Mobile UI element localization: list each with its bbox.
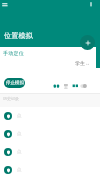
staticText: 点 bbox=[17, 167, 22, 173]
button[interactable]: Awards bbox=[63, 83, 69, 90]
button[interactable]: 点 bbox=[0, 125, 100, 143]
button[interactable]: 手动定位 bbox=[3, 50, 25, 56]
button[interactable]: Contacts bbox=[53, 83, 60, 90]
staticText: 点 bbox=[17, 113, 22, 119]
button[interactable]: 学生 bbox=[75, 60, 90, 66]
staticText: 点 bbox=[17, 131, 22, 137]
button[interactable]: 停止模拟 bbox=[4, 78, 25, 88]
button[interactable]: Menu bbox=[1, 1, 9, 8]
staticText: 点 bbox=[17, 149, 22, 155]
button[interactable]: Switch bbox=[80, 83, 88, 90]
staticText: 停止模拟 bbox=[6, 80, 24, 86]
button[interactable]: Add bbox=[80, 35, 95, 50]
button[interactable]: 点 bbox=[0, 107, 100, 125]
button[interactable]: 点 bbox=[0, 143, 100, 161]
staticText: 历史记录 bbox=[3, 96, 19, 101]
staticText: 位置模拟 bbox=[4, 31, 33, 40]
button[interactable]: More options bbox=[88, 1, 94, 8]
button[interactable]: 点 bbox=[0, 161, 100, 179]
staticText: 学生 bbox=[75, 60, 85, 66]
button[interactable]: Compare bbox=[72, 83, 79, 90]
